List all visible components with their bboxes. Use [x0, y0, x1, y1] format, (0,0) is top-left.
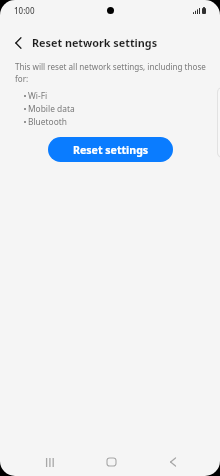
staticText: This will reset all network settings, in… — [15, 61, 216, 84]
staticText: Mobile data — [28, 103, 75, 114]
button[interactable]: Home — [99, 448, 123, 476]
staticText: Reset network settings — [32, 35, 158, 50]
button[interactable]: Back — [161, 448, 185, 476]
button[interactable]: Reset settings — [48, 137, 173, 162]
staticText: Bluetooth — [28, 116, 67, 127]
button[interactable]: Navigate up — [5, 30, 31, 56]
button[interactable]: Edge panel handle — [218, 88, 220, 157]
button[interactable]: Recent apps — [38, 448, 62, 476]
staticText: 10:00 — [14, 5, 35, 16]
staticText: Reset settings — [73, 143, 149, 157]
staticText: Wi-Fi — [28, 90, 48, 101]
